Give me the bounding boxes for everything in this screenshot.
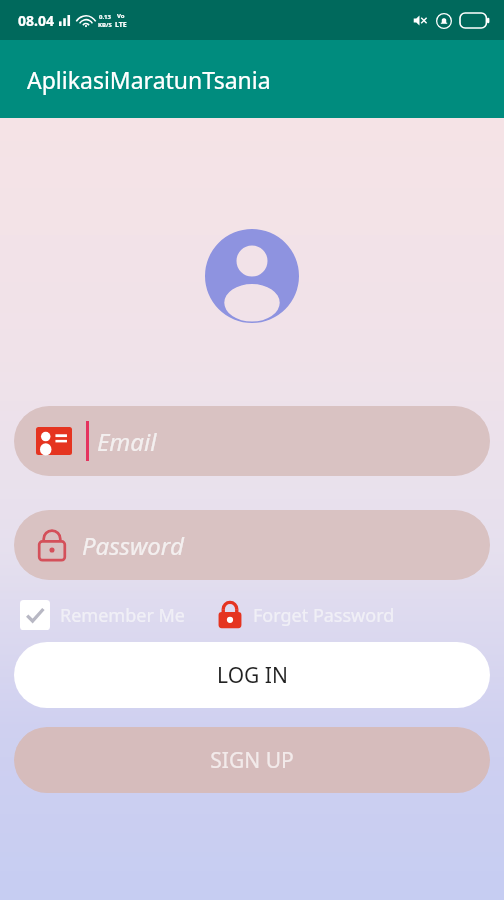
button[interactable]: Remember Me bbox=[20, 600, 185, 630]
other: Alarm bbox=[436, 13, 452, 29]
other: Mute bbox=[411, 12, 428, 29]
staticText: Vo bbox=[117, 12, 125, 20]
staticText: KB/S bbox=[98, 21, 112, 29]
staticText: 08.04 bbox=[18, 11, 54, 30]
staticText: Password bbox=[82, 529, 184, 562]
button[interactable]: SIGN UP bbox=[14, 727, 490, 793]
button[interactable]: Forget Password bbox=[217, 600, 395, 630]
staticText: LOG IN bbox=[217, 661, 288, 690]
staticText: Email bbox=[97, 425, 157, 458]
staticText: AplikasiMaratunTsania bbox=[27, 64, 271, 95]
button[interactable]: LOG IN bbox=[14, 642, 490, 708]
staticText: 0.13 bbox=[99, 13, 111, 21]
staticText: Remember Me bbox=[60, 603, 185, 628]
button[interactable]: Password bbox=[14, 510, 490, 580]
button[interactable]: Email bbox=[14, 406, 490, 476]
staticText: LTE bbox=[115, 20, 127, 30]
staticText: SIGN UP bbox=[210, 746, 294, 775]
staticText: Forget Password bbox=[253, 603, 395, 628]
